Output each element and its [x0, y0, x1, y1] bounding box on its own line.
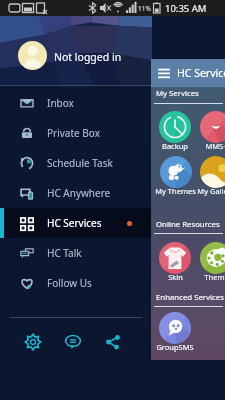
staticText: My Services: [156, 88, 199, 99]
staticText: 11%: [138, 4, 151, 13]
staticText: Theme: [204, 272, 225, 282]
staticText: Follow Us: [47, 276, 92, 290]
staticText: Schedule Task: [47, 156, 113, 170]
staticText: My Gallery: [197, 186, 225, 196]
button[interactable]: Private Box: [0, 118, 152, 148]
button[interactable]: GroupSMS: [154, 312, 196, 354]
button[interactable]: Backup: [154, 111, 196, 153]
button[interactable]: Follow Us: [0, 268, 152, 298]
button[interactable]: Menu: [155, 64, 173, 82]
staticText: Skin: [168, 272, 183, 282]
button[interactable]: HC Talk: [0, 238, 152, 268]
button[interactable]: My Themes: [154, 156, 196, 198]
button[interactable]: Inbox: [0, 88, 152, 118]
button[interactable]: HC Anywhere: [0, 178, 152, 208]
button[interactable]: Share: [99, 328, 127, 356]
button[interactable]: HC Services: [0, 208, 152, 238]
staticText: Backup: [162, 141, 188, 151]
staticText: HC Services: [47, 216, 102, 230]
button[interactable]: Theme: [195, 242, 225, 284]
staticText: HC Anywhere: [47, 186, 111, 200]
staticText: HC Talk: [47, 246, 82, 260]
staticText: HC Services: [177, 66, 225, 80]
button[interactable]: Menu: [151, 59, 225, 87]
staticText: Not logged in: [54, 50, 122, 64]
button[interactable]: Settings: [19, 328, 47, 356]
staticText: Inbox: [47, 96, 74, 110]
button[interactable]: Schedule Task: [0, 148, 152, 178]
button[interactable]: Skin: [154, 242, 196, 284]
staticText: Private Box: [47, 126, 100, 140]
staticText: 10:35 AM: [165, 2, 207, 15]
button[interactable]: Feedback: [59, 328, 87, 356]
button[interactable]: MMS+: [195, 111, 225, 153]
staticText: Enhanced Services: [156, 292, 224, 303]
button[interactable]: My Gallery: [195, 156, 225, 198]
staticText: MMS+: [205, 141, 225, 151]
staticText: GroupSMS: [156, 342, 194, 352]
staticText: Online Resources: [156, 219, 220, 230]
staticText: My Themes: [155, 186, 196, 196]
